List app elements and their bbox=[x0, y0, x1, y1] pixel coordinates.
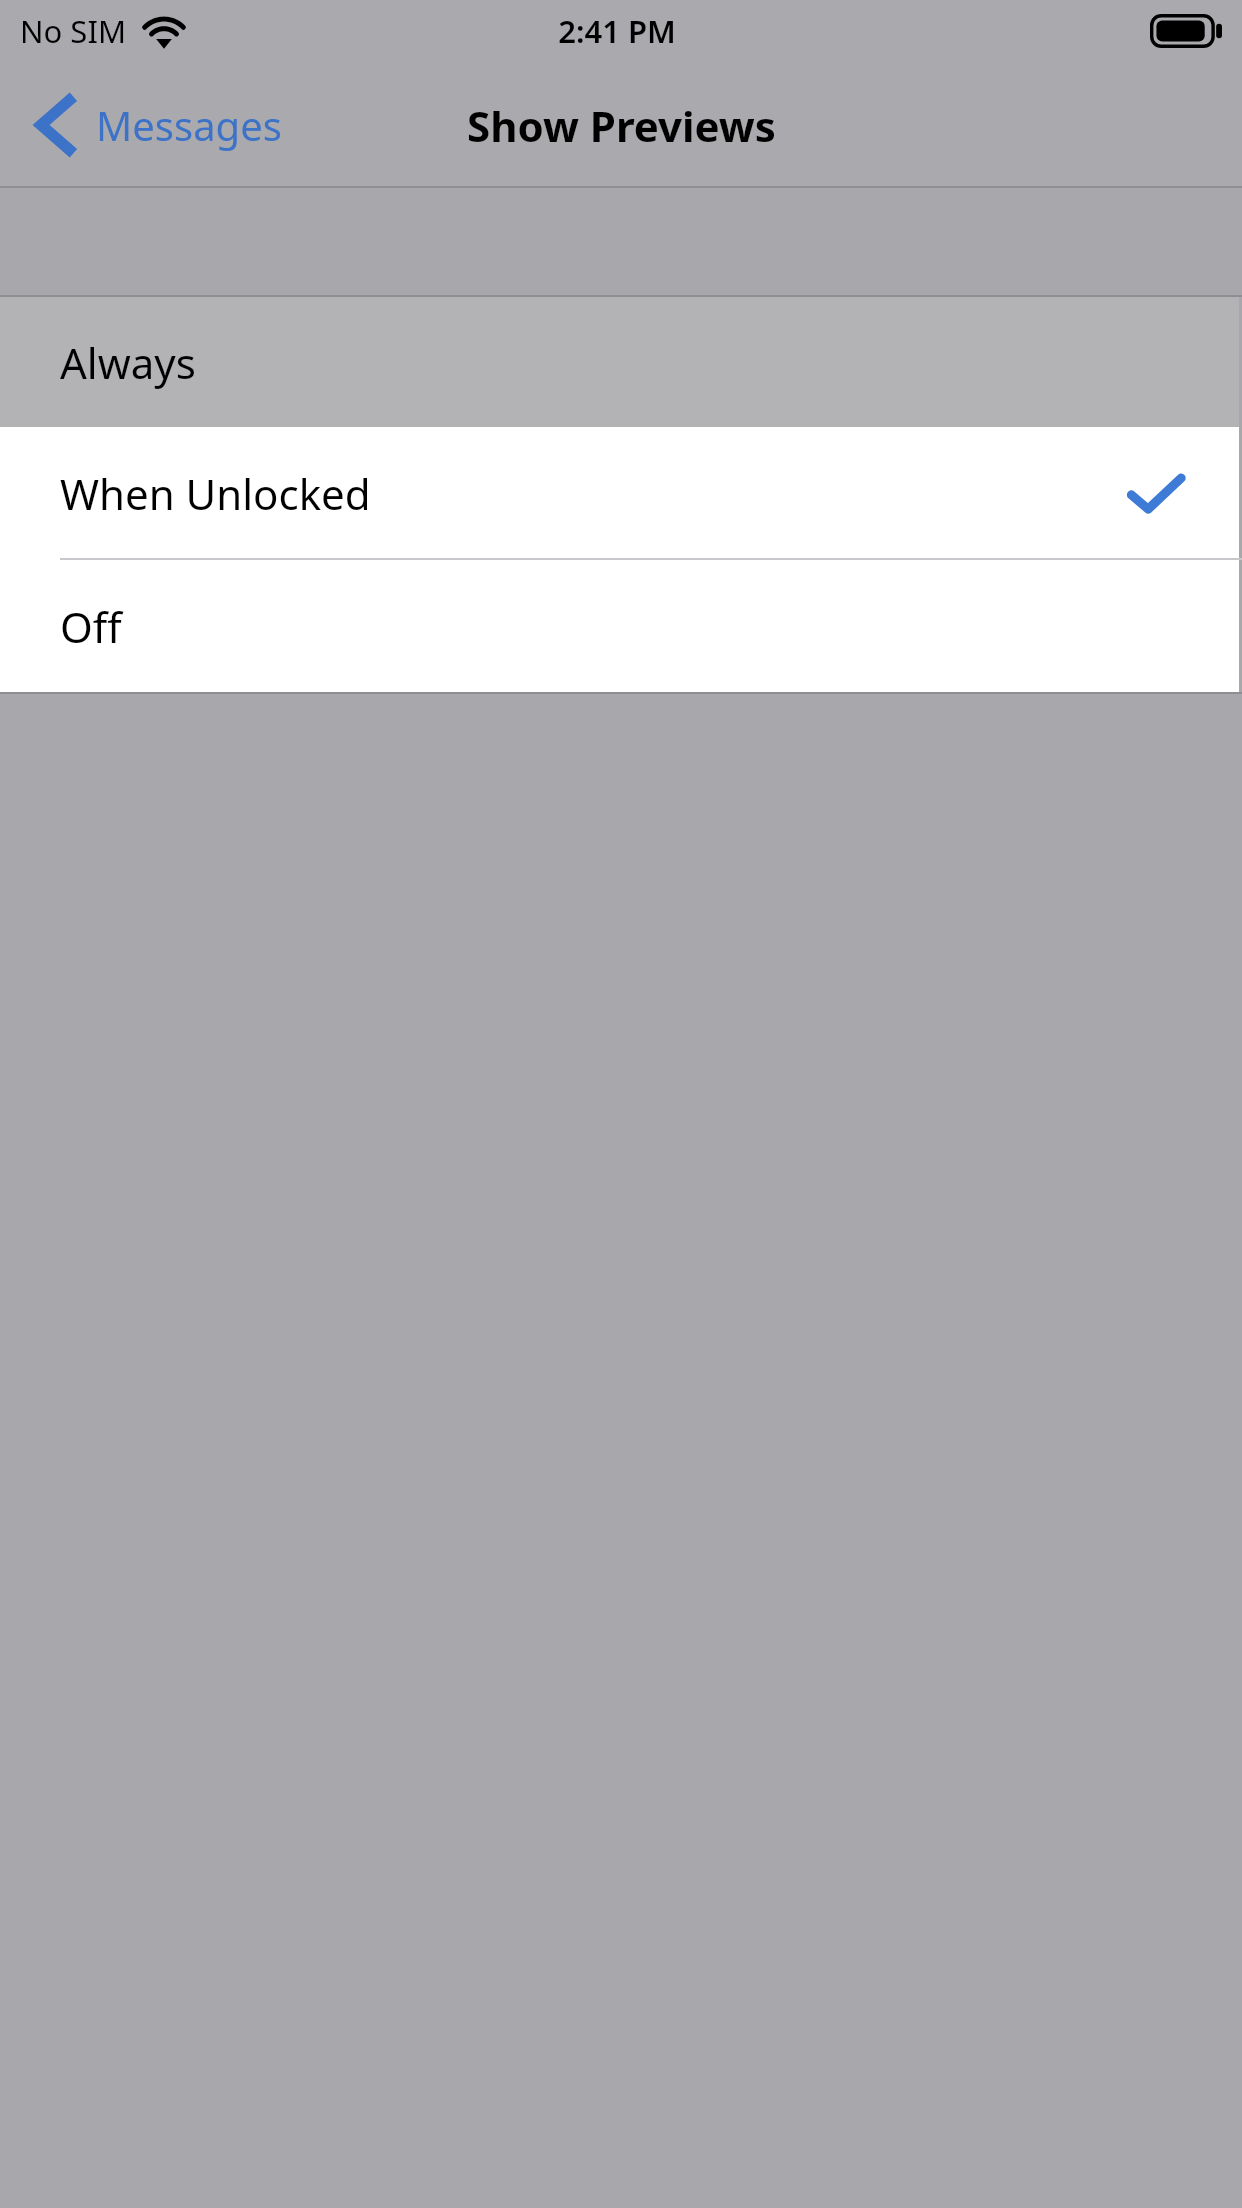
staticText: Off bbox=[60, 598, 122, 655]
staticText: Messages bbox=[96, 98, 282, 152]
staticText: No SIM bbox=[20, 10, 127, 52]
staticText: Show Previews bbox=[467, 97, 776, 154]
staticText: Always bbox=[60, 334, 196, 391]
button[interactable]: Back bbox=[0, 62, 296, 188]
button[interactable]: Always bbox=[0, 297, 1242, 427]
staticText: When Unlocked bbox=[60, 465, 371, 522]
button[interactable]: Off bbox=[0, 560, 1242, 692]
other: Back bbox=[34, 97, 78, 153]
staticText: 2:41 PM bbox=[558, 10, 676, 52]
button[interactable]: When Unlocked bbox=[0, 427, 1242, 560]
